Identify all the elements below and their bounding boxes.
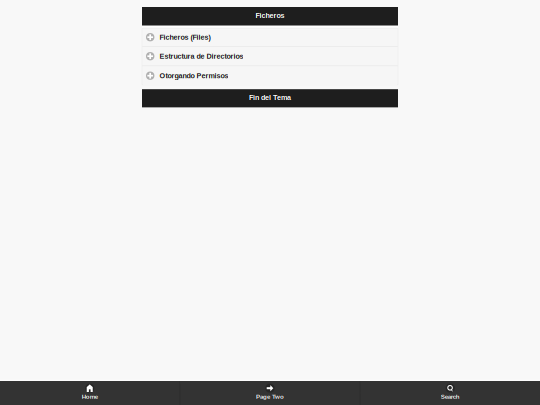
staticText: Home (82, 393, 98, 400)
staticText: Fin del Tema (249, 93, 291, 101)
button[interactable]: Home (0, 381, 179, 405)
button[interactable]: Estructura de Directorios (142, 47, 398, 66)
staticText: Search (441, 393, 460, 400)
button[interactable]: Page Two (180, 381, 360, 405)
staticText: Ficheros (255, 11, 284, 19)
button[interactable]: Otorgando Permisos (142, 66, 398, 85)
button[interactable]: Ficheros (Files) (142, 28, 398, 47)
button[interactable]: Search (360, 381, 540, 405)
staticText: Estructura de Directorios (159, 52, 243, 60)
staticText: Ficheros (Files) (159, 33, 210, 41)
staticText: Page Two (256, 393, 284, 400)
staticText: Otorgando Permisos (159, 72, 228, 80)
